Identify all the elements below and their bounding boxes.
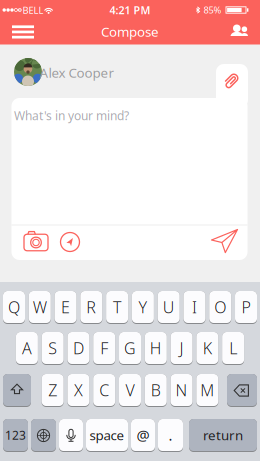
staticText: V [125,379,134,401]
staticText: J [180,337,184,359]
button[interactable]: S [42,332,64,365]
button[interactable]: D [67,332,89,365]
staticText: W [33,296,47,318]
button[interactable]: return [189,419,257,452]
button[interactable]: Add location [59,231,81,253]
button[interactable]: Q [3,291,25,324]
button[interactable]: B [145,374,167,407]
button[interactable]: Menu [0,20,46,44]
staticText: G [124,337,136,359]
button[interactable]: P [235,291,257,324]
staticText: @ [136,425,149,445]
staticText: 85% [203,4,221,16]
staticText: I [192,296,197,318]
button[interactable]: space [86,419,128,452]
staticText: B [151,379,161,401]
button[interactable]: . [158,419,183,452]
staticText: U [163,296,175,318]
button[interactable]: G [119,332,141,365]
staticText: 4:21 PM [109,3,150,17]
button[interactable]: T [106,291,128,324]
button[interactable]: Attach file [216,64,248,108]
button[interactable]: A [16,332,38,365]
button[interactable]: Shift [3,374,31,407]
staticText: 123 [5,427,26,443]
staticText: L [229,337,237,359]
button[interactable]: X [67,374,89,407]
staticText: Y [138,296,147,318]
staticText: space [89,426,124,444]
staticText: F [100,337,108,359]
staticText: M [200,379,214,401]
staticText: T [113,296,121,318]
staticText: BELL [22,4,43,16]
button[interactable]: @ [131,419,155,452]
staticText: Compose [101,23,159,40]
button[interactable]: M [196,374,218,407]
button[interactable]: K [196,332,218,365]
button[interactable]: I [183,291,205,324]
button[interactable]: N [171,374,193,407]
staticText: X [74,379,83,401]
button[interactable]: Z [42,374,64,407]
staticText: return [203,426,243,444]
button[interactable]: Y [132,291,154,324]
button[interactable]: Send [208,226,242,256]
button[interactable]: Add photo [21,229,51,255]
staticText: H [150,337,162,359]
staticText: What's in your mind? [14,107,129,123]
button[interactable]: O [209,291,231,324]
button[interactable]: Delete [227,374,257,407]
staticText: D [73,337,84,359]
button[interactable]: C [93,374,115,407]
button[interactable]: V [119,374,141,407]
button[interactable]: J [171,332,193,365]
button[interactable]: L [222,332,244,365]
button[interactable]: Contacts [226,20,252,40]
button[interactable]: R [80,291,102,324]
staticText: C [99,379,109,401]
button[interactable]: E [55,291,77,324]
staticText: Alex Cooper [39,64,114,81]
button[interactable]: W [29,291,51,324]
staticText: E [61,296,70,318]
staticText: Q [8,296,20,318]
staticText: O [214,296,226,318]
staticText: P [241,296,250,318]
button[interactable]: Dictate [59,419,83,452]
staticText: N [176,379,188,401]
staticText: A [22,337,32,359]
button[interactable]: 123 [3,419,28,452]
button[interactable]: F [93,332,115,365]
staticText: . [168,425,172,445]
staticText: R [86,296,96,318]
staticText: K [203,337,212,359]
staticText: S [48,337,57,359]
button[interactable]: H [145,332,167,365]
staticText: Z [48,379,57,401]
button[interactable]: U [158,291,180,324]
button[interactable]: Next keyboard [31,419,56,452]
